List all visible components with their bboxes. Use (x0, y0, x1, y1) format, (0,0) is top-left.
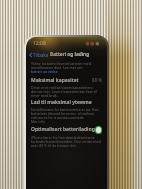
staticText: Dette er et mål på batterikapasiteten i … (31, 85, 102, 89)
staticText: 88 % (92, 77, 102, 83)
staticText: timer med bruk. (31, 93, 58, 97)
staticText: batteri og ytelse (31, 69, 58, 73)
staticText: reduseres for å unngå uventede avstengin… (31, 115, 102, 119)
staticText: Lad til maksimal yteevne (31, 99, 92, 105)
staticText: det var nytt. Lavere kapasitet kan føre … (31, 89, 102, 93)
staticText: forbedre batterilevetiden. Den venter me… (31, 139, 102, 143)
staticText: batteriets tilstand forverres, vil ytels… (31, 111, 95, 115)
staticText: Lad til maksimal yteevne (31, 99, 92, 105)
staticText: over 80 % til du trenger det. (31, 143, 77, 147)
staticText: Tilbake (33, 52, 49, 58)
staticText: batteri og ytelse (31, 69, 58, 73)
staticText: Maksimal kapasitet (31, 77, 79, 83)
staticText: over 80 % til du trenger det. (31, 143, 77, 147)
staticText: iPhone lærer fra hverdagsladerutinene di… (31, 135, 102, 139)
staticText: det var nytt. Lavere kapasitet kan føre … (31, 89, 102, 93)
staticText: iPhone lærer fra hverdagsladerutinene di… (31, 135, 102, 139)
staticText: 12:08 (33, 40, 46, 47)
staticText: innstillingene dine. Les mer om (31, 65, 83, 69)
staticText: timer med bruk. (31, 93, 58, 97)
staticText: 88 % (92, 77, 102, 83)
staticText: Mer info (31, 119, 45, 123)
staticText: Maksimal kapasitet (31, 77, 79, 83)
staticText: Batteri og lading (50, 51, 90, 58)
staticText: Maksimal kapasitet (31, 77, 79, 83)
staticText: Ytelse og batterilevetid varierer med br… (31, 61, 102, 65)
staticText: Ytelse og batterilevetid varierer med br… (31, 61, 102, 65)
staticText: Innstillingene for batteriytelse er på. … (31, 107, 99, 111)
staticText: Dette er et mål på batterikapasiteten i … (31, 85, 102, 89)
staticText: over 80 % til du trenger det. (31, 143, 77, 147)
staticText: Tilbake (33, 52, 49, 58)
staticText: Innstillingene for batteriytelse er på. … (31, 107, 99, 111)
staticText: batteri og ytelse (31, 69, 58, 73)
button[interactable]: Optimalisert batterilading (31, 125, 102, 134)
button[interactable]: Tilbake (26, 52, 51, 58)
staticText: batteriets tilstand forverres, vil ytels… (31, 111, 95, 115)
staticText: Batteri og lading (50, 51, 90, 58)
button[interactable]: Maksimal kapasitet (31, 77, 102, 83)
staticText: Optimalisert batterilading (31, 126, 95, 133)
staticText: iPhone lærer fra hverdagsladerutinene di… (31, 135, 102, 139)
staticText: 88 % (92, 77, 102, 83)
staticText: reduseres for å unngå uventede avstengin… (31, 115, 102, 119)
staticText: forbedre batterilevetiden. Den venter me… (31, 139, 102, 143)
staticText: innstillingene dine. Les mer om (31, 65, 83, 69)
staticText: Mer info (31, 119, 45, 123)
staticText: Batteri og lading (50, 51, 90, 58)
staticText: 12:08 (33, 40, 46, 47)
staticText: det var nytt. Lavere kapasitet kan føre … (31, 89, 102, 93)
other: Optimalisert batterilading (95, 126, 102, 134)
staticText: batteriets tilstand forverres, vil ytels… (31, 111, 95, 115)
staticText: Lad til maksimal yteevne (31, 99, 92, 105)
staticText: Mer info (31, 119, 45, 123)
staticText: Tilbake (33, 52, 49, 58)
staticText: Dette er et mål på batterikapasiteten i … (31, 85, 102, 89)
staticText: innstillingene dine. Les mer om (31, 65, 83, 69)
staticText: forbedre batterilevetiden. Den venter me… (31, 139, 102, 143)
staticText: Optimalisert batterilading (31, 126, 95, 133)
staticText: reduseres for å unngå uventede avstengin… (31, 115, 102, 119)
staticText: Optimalisert batterilading (31, 126, 95, 133)
button[interactable]: Lad til maksimal yteevne (31, 99, 102, 105)
staticText: Innstillingene for batteriytelse er på. … (31, 107, 99, 111)
staticText: 12:08 (33, 40, 46, 47)
staticText: Ytelse og batterilevetid varierer med br… (31, 61, 102, 65)
staticText: timer med bruk. (31, 93, 58, 97)
